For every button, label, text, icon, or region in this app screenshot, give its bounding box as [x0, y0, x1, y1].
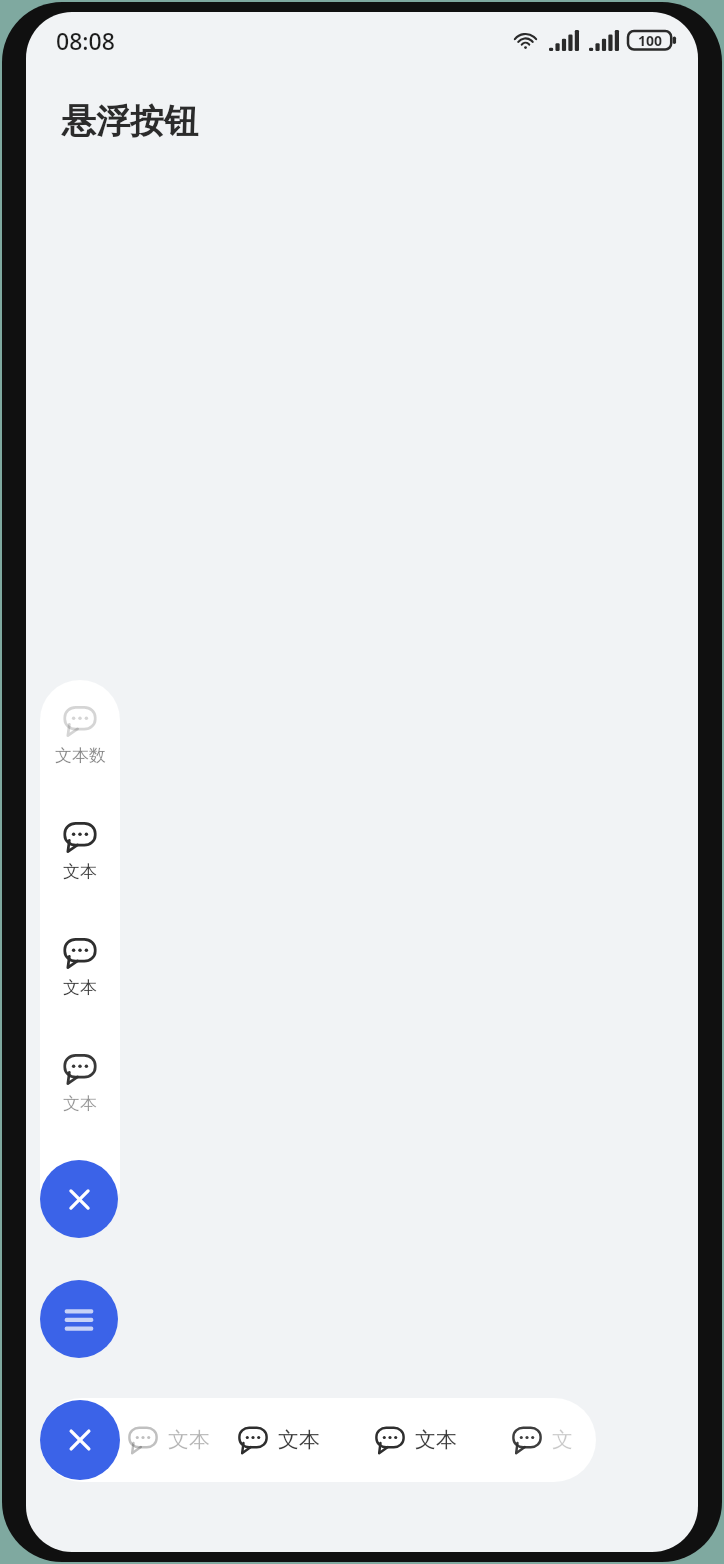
button[interactable]: 文本: [236, 1398, 372, 1482]
staticText: 文本: [63, 1093, 97, 1114]
staticText: 文本数: [55, 745, 106, 766]
staticText: 文: [552, 1427, 573, 1453]
button[interactable]: 文本: [40, 1050, 120, 1150]
staticText: 文本: [278, 1427, 320, 1453]
staticText: 08:08: [56, 25, 115, 56]
button[interactable]: 文本: [373, 1398, 509, 1482]
staticText: 悬浮按钮: [62, 100, 198, 143]
button[interactable]: 文本数: [40, 702, 120, 802]
staticText: 文本: [415, 1427, 457, 1453]
button[interactable]: 文本: [40, 818, 120, 918]
button[interactable]: Open menu: [40, 1280, 118, 1358]
button[interactable]: 文本: [126, 1398, 256, 1482]
button[interactable]: Close: [40, 1160, 118, 1238]
button[interactable]: Close: [40, 1400, 120, 1480]
button[interactable]: 文: [510, 1398, 596, 1482]
staticText: 文本: [63, 861, 97, 882]
staticText: 文本: [63, 977, 97, 998]
staticText: 文本: [168, 1427, 210, 1453]
staticText: 100: [638, 31, 663, 50]
button[interactable]: 文本: [40, 934, 120, 1034]
